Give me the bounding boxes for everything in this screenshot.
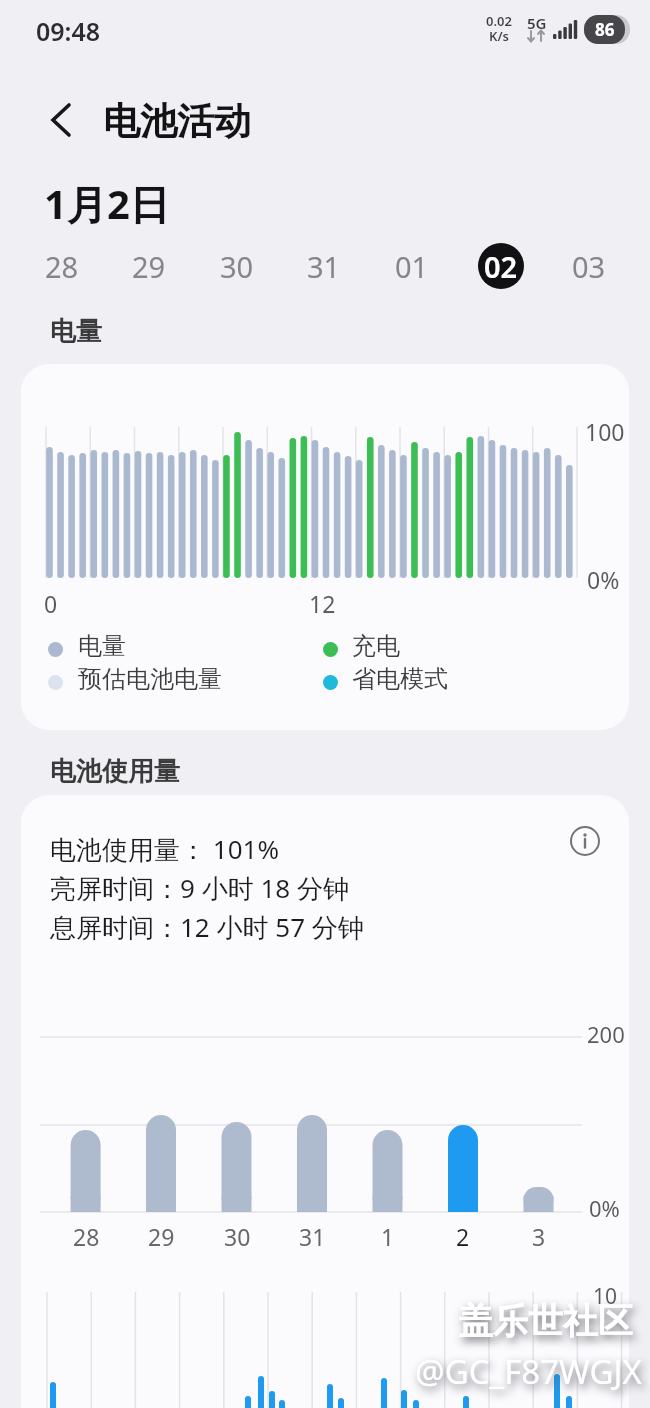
- staticText: 电量: [78, 631, 126, 661]
- staticText: 28: [45, 247, 79, 286]
- button[interactable]: 29: [131, 1219, 191, 1253]
- staticText: 0%: [587, 564, 620, 595]
- button[interactable]: 28: [56, 1219, 116, 1253]
- button[interactable]: 02: [461, 240, 541, 292]
- button[interactable]: 1: [358, 1219, 418, 1253]
- staticText: 电池使用量： 101%: [50, 831, 279, 867]
- staticText: K/s: [489, 27, 510, 45]
- staticText: 盖乐世社区: [458, 1299, 633, 1343]
- staticText: 1月2日: [44, 176, 170, 231]
- staticText: 充电: [352, 631, 400, 661]
- staticText: 12: [309, 588, 336, 619]
- staticText: 0%: [589, 1193, 620, 1223]
- staticText: 电池活动: [103, 98, 251, 145]
- staticText: 01: [395, 247, 429, 286]
- button[interactable]: 2: [433, 1219, 493, 1253]
- button[interactable]: 29: [109, 240, 189, 292]
- staticText: 28: [73, 1221, 100, 1252]
- staticText: 电量: [50, 315, 102, 348]
- staticText: 30: [220, 247, 254, 286]
- staticText: 0.02: [486, 12, 512, 30]
- staticText: 省电模式: [352, 664, 448, 694]
- staticText: @GC_F87WGJX: [415, 1349, 642, 1394]
- button[interactable]: 03: [549, 240, 629, 292]
- staticText: 86: [595, 18, 615, 41]
- staticText: 息屏时间：12 小时 57 分钟: [50, 909, 364, 945]
- staticText: 10: [593, 1282, 618, 1311]
- button[interactable]: 3: [509, 1219, 569, 1253]
- staticText: 电池使用量: [50, 755, 180, 788]
- button[interactable]: 30: [207, 1219, 267, 1253]
- staticText: 30: [224, 1221, 251, 1252]
- button[interactable]: [563, 819, 607, 863]
- staticText: 预估电池电量: [78, 664, 222, 694]
- staticText: 03: [572, 247, 606, 286]
- button[interactable]: 01: [372, 240, 452, 292]
- button[interactable]: 30: [197, 240, 277, 292]
- staticText: 3: [532, 1221, 546, 1252]
- button[interactable]: [34, 94, 86, 146]
- staticText: 0: [44, 588, 58, 619]
- staticText: 2: [456, 1221, 470, 1252]
- staticText: 29: [148, 1221, 175, 1252]
- staticText: 31: [307, 247, 341, 286]
- staticText: 02: [484, 247, 518, 286]
- staticText: 29: [132, 247, 166, 286]
- staticText: 200: [587, 1019, 625, 1049]
- staticText: 亮屏时间：9 小时 18 分钟: [50, 870, 349, 906]
- button[interactable]: 28: [22, 240, 102, 292]
- staticText: 1: [381, 1221, 395, 1252]
- staticText: 31: [299, 1221, 326, 1252]
- button[interactable]: 31: [282, 1219, 342, 1253]
- staticText: 100: [585, 416, 625, 447]
- staticText: 09:48: [36, 14, 101, 48]
- button[interactable]: 31: [284, 240, 364, 292]
- staticText: 5G: [527, 13, 547, 33]
